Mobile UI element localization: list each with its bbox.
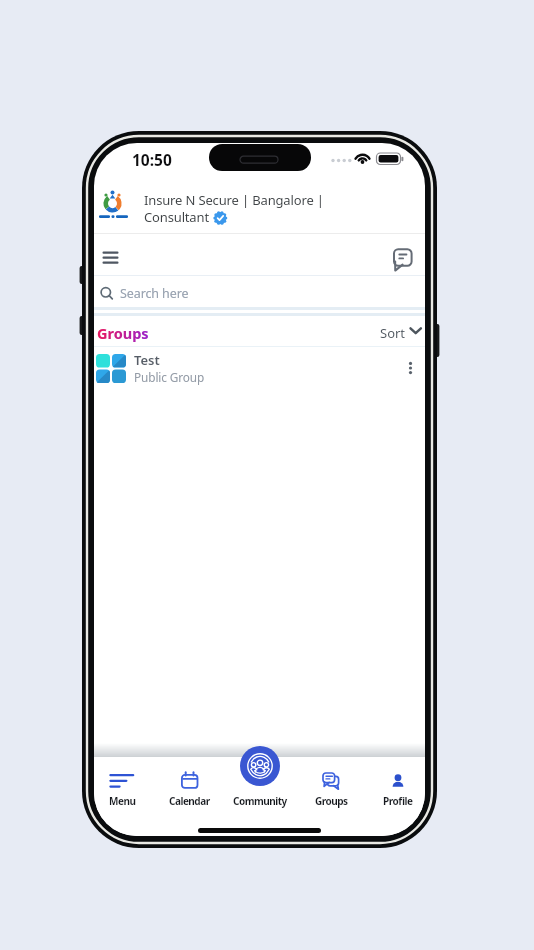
button[interactable]: [389, 245, 417, 275]
staticText: Public Group: [134, 369, 205, 385]
staticText: Community: [233, 794, 287, 808]
staticText: Groups: [97, 323, 149, 343]
staticText: 10:50: [132, 149, 172, 170]
button[interactable]: [240, 746, 280, 786]
button[interactable]: Search here: [94, 277, 425, 307]
button[interactable]: [96, 245, 126, 271]
staticText: Calendar: [169, 794, 210, 808]
button[interactable]: Sort: [376, 320, 425, 342]
staticText: Insure N Secure | Bangalore |: [144, 191, 324, 209]
button[interactable]: [157, 763, 221, 811]
staticText: Search here: [120, 285, 189, 302]
staticText: Menu: [109, 794, 136, 808]
staticText: Sort: [380, 324, 406, 342]
staticText: Groups: [315, 794, 348, 808]
staticText: Test: [134, 351, 160, 369]
button[interactable]: Test: [94, 347, 425, 391]
button[interactable]: [94, 763, 154, 811]
staticText: Consultant: [144, 208, 209, 226]
staticText: Profile: [383, 794, 413, 808]
button[interactable]: [366, 763, 425, 811]
button[interactable]: [299, 763, 363, 811]
